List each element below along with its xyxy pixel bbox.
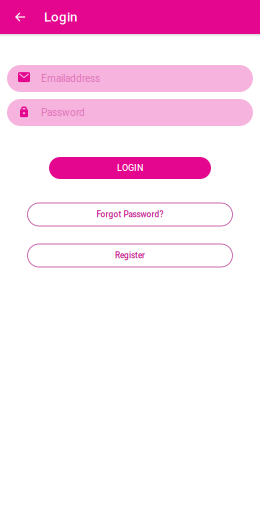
button[interactable]: Forgot Password? — [27, 203, 232, 226]
button[interactable]: Password — [7, 99, 253, 126]
staticText: Emailaddress — [41, 73, 100, 84]
staticText: LOGIN — [117, 163, 143, 173]
staticText: Register — [115, 251, 145, 260]
staticText: Login — [44, 9, 77, 25]
staticText: Forgot Password? — [96, 210, 163, 219]
button[interactable]: LOGIN — [49, 157, 211, 179]
button[interactable]: Register — [27, 244, 232, 267]
button[interactable]: Emailaddress — [7, 65, 253, 92]
button[interactable]: Back — [7, 0, 34, 34]
staticText: Password — [41, 107, 85, 118]
